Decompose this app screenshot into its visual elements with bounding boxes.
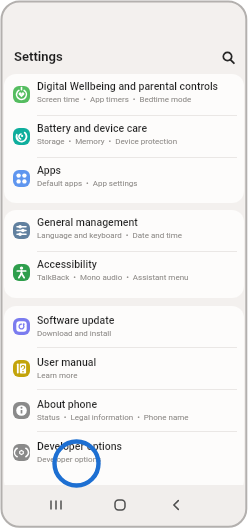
button[interactable] bbox=[164, 493, 188, 517]
staticText: User manual bbox=[37, 356, 97, 368]
button[interactable] bbox=[46, 493, 70, 517]
button[interactable]: Accessibility bbox=[4, 252, 244, 293]
button[interactable]: Battery and device care bbox=[4, 116, 244, 157]
button[interactable]: General management bbox=[4, 210, 244, 251]
staticText: TalkBack • Mono audio • Assistant menu bbox=[37, 273, 189, 282]
staticText: Default apps • App settings bbox=[37, 179, 138, 188]
staticText: Software update bbox=[37, 314, 115, 326]
button[interactable]: User manual bbox=[4, 348, 244, 389]
staticText: Accessibility bbox=[37, 258, 97, 270]
staticText: Status • Legal information • Phone name bbox=[37, 413, 189, 422]
button[interactable] bbox=[218, 46, 240, 68]
button[interactable]: About phone bbox=[4, 390, 244, 431]
button[interactable]: Apps bbox=[4, 158, 244, 199]
staticText: Screen time • App timers • Bedtime mode bbox=[37, 95, 192, 104]
staticText: Developer options bbox=[37, 440, 123, 452]
staticText: Battery and device care bbox=[37, 122, 148, 134]
button[interactable] bbox=[108, 493, 132, 517]
staticText: Storage • Memory • Device protection bbox=[37, 137, 178, 146]
button[interactable]: Developer options bbox=[4, 432, 244, 473]
button[interactable]: Digital Wellbeing and parental controls bbox=[4, 74, 244, 115]
staticText: Apps bbox=[37, 164, 61, 176]
staticText: About phone bbox=[37, 398, 98, 410]
staticText: Settings bbox=[14, 49, 63, 64]
staticText: Digital Wellbeing and parental controls bbox=[37, 80, 219, 92]
staticText: Developer options bbox=[37, 455, 102, 464]
staticText: Download and install bbox=[37, 329, 112, 338]
button[interactable]: Software update bbox=[4, 306, 244, 347]
staticText: Language and keyboard • Date and time bbox=[37, 231, 182, 240]
staticText: Learn more bbox=[37, 371, 78, 380]
staticText: General management bbox=[37, 216, 138, 228]
